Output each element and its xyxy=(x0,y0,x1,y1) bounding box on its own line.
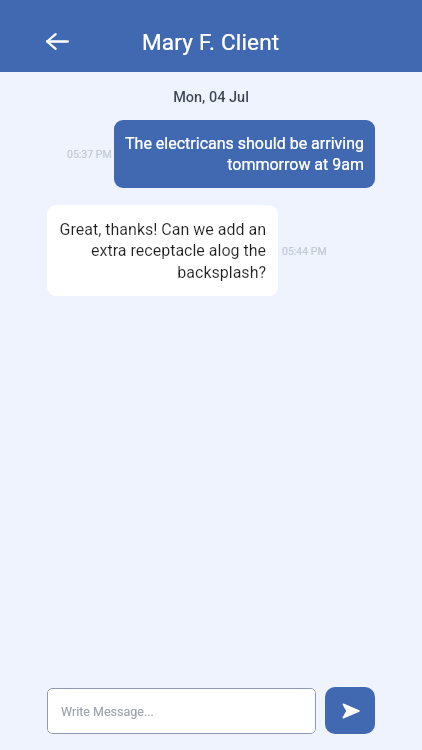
button[interactable]: The electricans should be arriving tommo… xyxy=(114,120,375,188)
staticText: Write Message... xyxy=(61,704,154,719)
staticText: 05:37 PM xyxy=(67,148,112,160)
button[interactable]: Write Message... xyxy=(47,688,316,734)
button[interactable]: Great, thanks! Can we add an extra recep… xyxy=(47,205,278,296)
staticText: The electricans should be arriving tommo… xyxy=(125,134,364,174)
staticText: 05:44 PM xyxy=(282,245,327,257)
button[interactable]: Send message xyxy=(325,687,375,734)
staticText: Great, thanks! Can we add an extra recep… xyxy=(59,220,266,282)
button[interactable]: Back xyxy=(34,18,80,64)
staticText: Mon, 04 Jul xyxy=(0,89,422,106)
staticText: Mary F. Client xyxy=(142,29,280,55)
